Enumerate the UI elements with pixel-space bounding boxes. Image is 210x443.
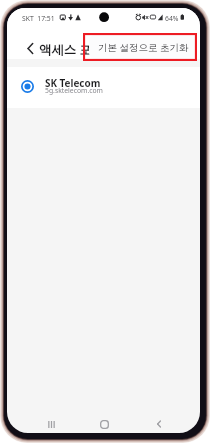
button[interactable]: Recents <box>40 413 62 433</box>
staticText: 기본 설정으로 초기화 <box>98 41 189 54</box>
button[interactable]: Back <box>21 39 39 57</box>
staticText: SKT 17:51 <box>22 14 55 23</box>
button[interactable]: 기본 설정으로 초기화 <box>89 35 197 59</box>
staticText: 액세스 포인트 이름 <box>39 41 145 58</box>
staticText: 5g.sktelecom.com <box>45 86 103 95</box>
button[interactable]: SK Telecom <box>7 67 200 108</box>
staticText: SK Telecom <box>45 76 101 89</box>
button[interactable]: Back <box>148 413 170 433</box>
button[interactable]: Home <box>93 413 115 433</box>
staticText: 64% <box>165 14 179 23</box>
